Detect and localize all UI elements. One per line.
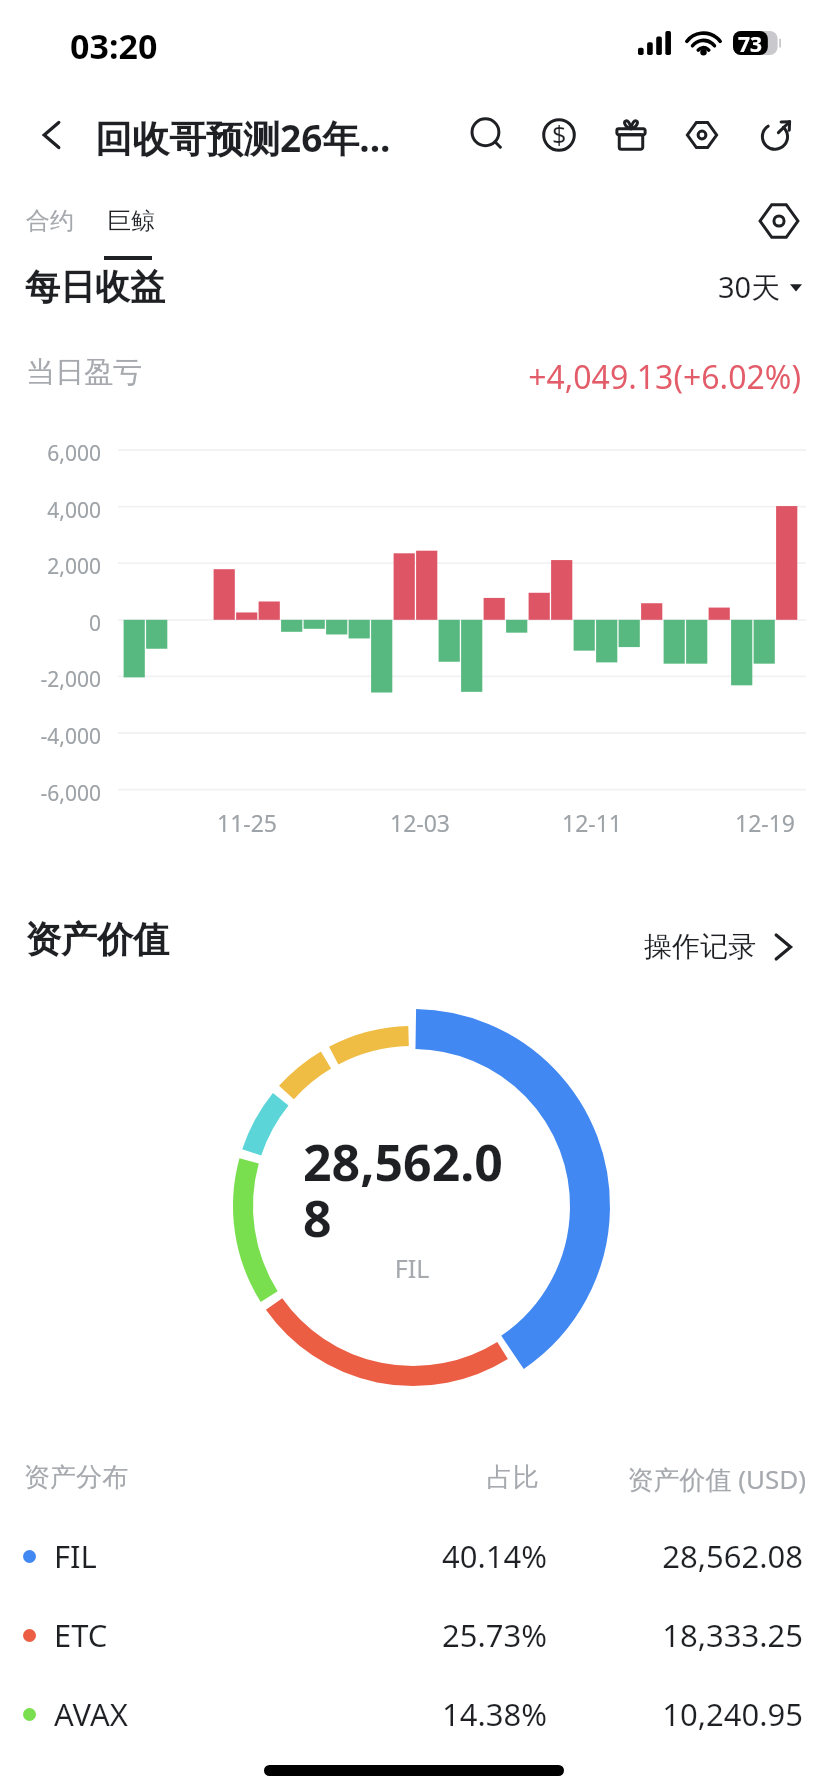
staticText: ETC — [54, 1614, 338, 1656]
button[interactable]: 合约 — [8, 194, 92, 248]
staticText: 25.73% — [338, 1614, 547, 1656]
button[interactable]: Back — [16, 92, 88, 178]
button[interactable]: Gift — [596, 92, 666, 178]
button[interactable]: 30天 — [712, 259, 808, 315]
button[interactable]: ETC — [0, 1596, 828, 1674]
staticText: 4,000 — [0, 496, 101, 525]
staticText: 资产价值 — [25, 917, 169, 962]
staticText: 12-03 — [360, 807, 480, 838]
staticText: 资产价值 (USD) — [560, 1461, 806, 1497]
staticText: 巨鲸 — [107, 206, 155, 236]
button[interactable]: Share — [741, 92, 811, 178]
staticText: 30天 — [718, 267, 781, 307]
button[interactable]: Settings — [667, 92, 737, 178]
staticText: -6,000 — [0, 779, 101, 808]
staticText: 12-19 — [705, 807, 825, 838]
staticText: 每日收益 — [25, 265, 165, 309]
button[interactable]: Rewards — [524, 92, 594, 178]
button[interactable]: Filter — [748, 190, 810, 252]
staticText: 6,000 — [0, 439, 101, 468]
staticText: FIL — [54, 1535, 338, 1577]
staticText: 当日盈亏 — [26, 354, 142, 391]
staticText: 0 — [0, 609, 101, 638]
staticText: 占比 — [330, 1461, 539, 1494]
button[interactable]: Search — [453, 92, 523, 178]
staticText: 回收哥预测26年... — [95, 112, 391, 163]
staticText: 28,562.0 — [303, 1128, 503, 1196]
staticText: 8 — [303, 1184, 332, 1252]
button[interactable]: AVAX — [0, 1675, 828, 1753]
staticText: 操作记录 — [644, 929, 756, 964]
button[interactable]: 操作记录 — [636, 921, 800, 972]
staticText: 03:20 — [70, 23, 158, 69]
staticText: 73 — [738, 30, 763, 54]
button[interactable]: FIL — [0, 1517, 828, 1595]
button[interactable]: 巨鲸 — [89, 194, 173, 248]
staticText: 资产分布 — [24, 1461, 128, 1494]
staticText: 10,240.95 — [547, 1693, 803, 1735]
staticText: -4,000 — [0, 722, 101, 751]
staticText: 40.14% — [338, 1535, 547, 1577]
staticText: $ — [552, 117, 567, 151]
staticText: 11-25 — [187, 807, 307, 838]
staticText: 28,562.08 — [547, 1535, 803, 1577]
staticText: 2,000 — [0, 552, 101, 581]
staticText: -2,000 — [0, 665, 101, 694]
staticText: 12-11 — [532, 807, 652, 838]
staticText: FIL — [306, 1251, 518, 1285]
staticText: +4,049.13(+6.02%) — [328, 355, 801, 399]
staticText: AVAX — [54, 1693, 338, 1735]
staticText: 14.38% — [338, 1693, 547, 1735]
staticText: 合约 — [26, 206, 74, 236]
staticText: 18,333.25 — [547, 1614, 803, 1656]
